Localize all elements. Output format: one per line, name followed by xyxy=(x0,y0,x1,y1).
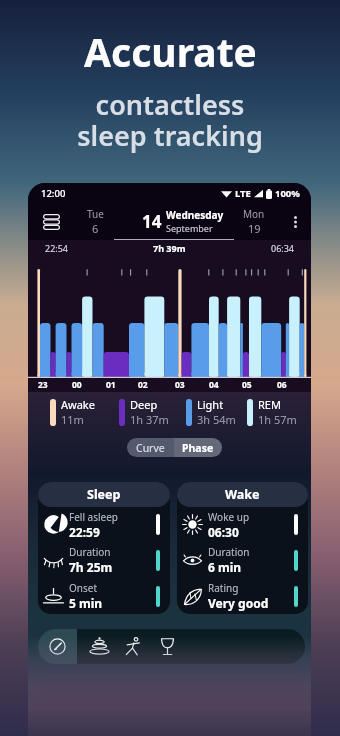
button[interactable]: REM xyxy=(247,397,297,427)
staticText: Phase xyxy=(182,441,214,455)
staticText: Onset xyxy=(69,581,98,595)
staticText: 7h 25m xyxy=(69,559,113,575)
button[interactable]: Fell asleep xyxy=(38,507,170,542)
staticText: Woke up xyxy=(208,510,250,524)
button[interactable]: Woke up xyxy=(177,507,308,542)
staticText: Mon xyxy=(243,207,265,221)
staticText: Tue xyxy=(87,207,104,221)
staticText: 19 xyxy=(248,221,261,236)
staticText: 23 xyxy=(38,379,48,391)
staticText: Duration xyxy=(208,545,250,559)
staticText: 100% xyxy=(275,187,300,200)
staticText: 22:54 xyxy=(45,242,69,254)
staticText: 04 xyxy=(209,379,219,391)
staticText: 01 xyxy=(106,379,116,391)
staticText: Light xyxy=(197,397,224,412)
staticText: 06:30 xyxy=(208,524,239,540)
staticText: 1h 57m xyxy=(258,412,297,427)
staticText: 6 xyxy=(92,221,99,236)
staticText: 5 min xyxy=(69,595,103,611)
button[interactable]: Running xyxy=(123,636,144,657)
staticText: 6 min xyxy=(208,559,242,575)
button[interactable]: Deep xyxy=(119,397,169,427)
button[interactable]: Duration xyxy=(38,542,170,578)
button[interactable]: Menu xyxy=(36,207,66,237)
staticText: 06:34 xyxy=(271,242,295,254)
staticText: Sleep xyxy=(87,486,121,503)
staticText: 05 xyxy=(242,379,252,391)
staticText: 02 xyxy=(138,379,148,391)
staticText: 12:00 xyxy=(41,187,66,200)
staticText: 1h 37m xyxy=(130,412,169,427)
staticText: 3h 54m xyxy=(197,412,236,427)
staticText: Curve xyxy=(136,441,165,455)
staticText: 22:59 xyxy=(69,524,100,540)
button[interactable]: Phase xyxy=(174,438,222,457)
button[interactable]: Edit tags xyxy=(38,629,77,664)
staticText: contactless sleep tracking xyxy=(77,86,263,154)
button[interactable]: Awake xyxy=(50,397,95,427)
staticText: Deep xyxy=(130,397,158,412)
staticText: 03 xyxy=(175,379,185,391)
staticText: Wednesday xyxy=(166,208,224,222)
staticText: REM xyxy=(258,397,281,412)
staticText: Awake xyxy=(61,397,95,412)
staticText: September xyxy=(166,222,213,234)
staticText: Fell asleep xyxy=(69,510,118,524)
staticText: 00 xyxy=(72,379,82,391)
staticText: LTE xyxy=(235,187,251,200)
button[interactable]: More options xyxy=(283,210,307,234)
staticText: Accurate xyxy=(84,25,257,78)
button[interactable]: Duration xyxy=(177,542,308,578)
staticText: Rating xyxy=(208,581,239,595)
staticText: 7h 39m xyxy=(153,242,186,254)
button[interactable]: Alcohol xyxy=(157,636,178,657)
button[interactable]: Rating xyxy=(177,578,308,614)
staticText: Wake xyxy=(225,486,260,503)
button[interactable]: Curve xyxy=(127,438,174,457)
staticText: 11m xyxy=(61,412,84,427)
button[interactable]: Meditation xyxy=(89,636,110,657)
staticText: Very good xyxy=(208,595,269,611)
staticText: 06 xyxy=(277,379,287,391)
button[interactable]: Light xyxy=(186,397,236,427)
staticText: Duration xyxy=(69,545,111,559)
button[interactable]: Onset xyxy=(38,578,170,614)
staticText: 14 xyxy=(142,210,162,233)
